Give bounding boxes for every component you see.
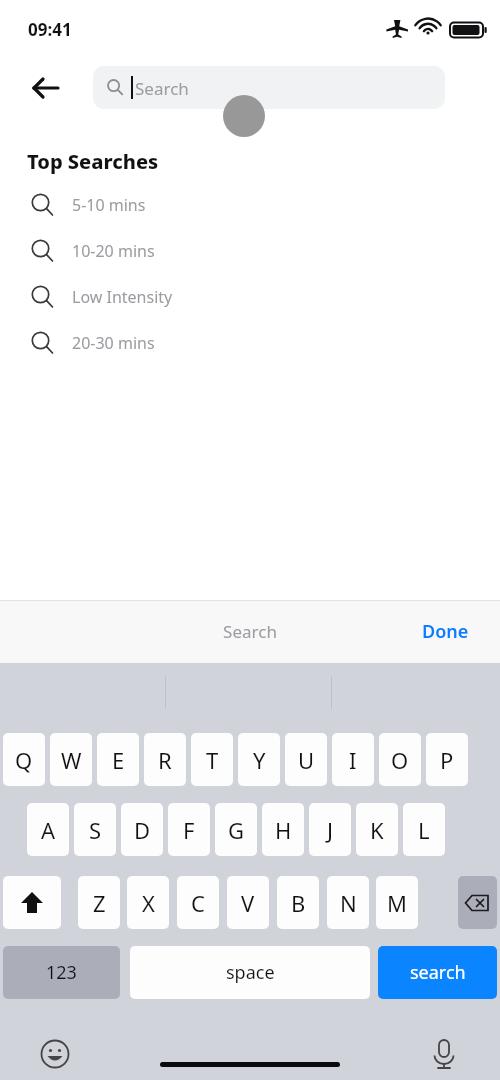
button[interactable]: Profile bbox=[223, 95, 265, 137]
button[interactable]: Back bbox=[22, 64, 70, 112]
staticText: I bbox=[349, 745, 357, 775]
button[interactable]: 20-30 mins bbox=[0, 320, 500, 366]
staticText: M bbox=[387, 888, 407, 918]
staticText: H bbox=[275, 815, 292, 845]
staticText: O bbox=[391, 745, 409, 775]
button[interactable]: space bbox=[130, 946, 370, 999]
staticText: T bbox=[206, 745, 219, 775]
button[interactable]: N bbox=[327, 876, 369, 929]
staticText: B bbox=[291, 888, 306, 918]
button[interactable]: T bbox=[191, 733, 233, 786]
staticText: U bbox=[298, 745, 315, 775]
staticText: 09:41 bbox=[28, 18, 72, 41]
button[interactable]: search bbox=[378, 946, 497, 999]
button[interactable]: 5-10 mins bbox=[0, 182, 500, 228]
button[interactable]: C bbox=[177, 876, 219, 929]
staticText: 10-20 mins bbox=[72, 240, 155, 262]
button[interactable]: P bbox=[426, 733, 468, 786]
button[interactable]: X bbox=[127, 876, 169, 929]
staticText: D bbox=[134, 815, 151, 845]
button[interactable]: Z bbox=[78, 876, 120, 929]
staticText: F bbox=[183, 815, 195, 845]
button[interactable]: H bbox=[262, 803, 304, 856]
staticText: G bbox=[228, 815, 245, 845]
button[interactable]: Backspace bbox=[458, 876, 497, 929]
staticText: space bbox=[226, 960, 275, 985]
staticText: C bbox=[191, 888, 205, 918]
staticText: E bbox=[112, 745, 125, 775]
button[interactable]: A bbox=[27, 803, 69, 856]
staticText: Z bbox=[93, 888, 106, 918]
button[interactable]: M bbox=[376, 876, 418, 929]
button[interactable]: I bbox=[332, 733, 374, 786]
staticText: J bbox=[327, 815, 334, 845]
staticText: search bbox=[410, 960, 466, 985]
staticText: X bbox=[142, 888, 155, 918]
staticText: R bbox=[158, 745, 172, 775]
button[interactable]: K bbox=[356, 803, 398, 856]
button[interactable]: B bbox=[277, 876, 319, 929]
button[interactable]: W bbox=[50, 733, 92, 786]
staticText: Search bbox=[135, 77, 189, 100]
button[interactable]: J bbox=[309, 803, 351, 856]
staticText: 123 bbox=[46, 960, 77, 985]
button[interactable]: D bbox=[121, 803, 163, 856]
button[interactable]: Q bbox=[3, 733, 45, 786]
staticText: W bbox=[61, 745, 82, 775]
staticText: S bbox=[89, 815, 102, 845]
staticText: 5-10 mins bbox=[72, 194, 146, 216]
button[interactable]: Shift bbox=[3, 876, 61, 929]
button[interactable]: U bbox=[285, 733, 327, 786]
button[interactable]: V bbox=[227, 876, 269, 929]
staticText: Q bbox=[15, 745, 33, 775]
button[interactable]: Low Intensity bbox=[0, 274, 500, 320]
staticText: L bbox=[418, 815, 430, 845]
button[interactable]: Y bbox=[238, 733, 280, 786]
button[interactable]: Search bbox=[93, 66, 445, 109]
staticText: Top Searches bbox=[27, 148, 159, 175]
button[interactable]: L bbox=[403, 803, 445, 856]
staticText: Done bbox=[422, 619, 469, 644]
button[interactable]: Emoji bbox=[33, 1032, 77, 1076]
button[interactable]: S bbox=[74, 803, 116, 856]
button[interactable]: G bbox=[215, 803, 257, 856]
button[interactable]: F bbox=[168, 803, 210, 856]
staticText: Search bbox=[0, 620, 500, 644]
staticText: N bbox=[340, 888, 357, 918]
staticText: Low Intensity bbox=[72, 286, 173, 308]
button[interactable]: Dictation bbox=[422, 1032, 466, 1076]
button[interactable]: O bbox=[379, 733, 421, 786]
staticText: K bbox=[370, 815, 384, 845]
staticText: Y bbox=[253, 745, 266, 775]
staticText: V bbox=[241, 888, 255, 918]
button[interactable]: Done bbox=[408, 612, 482, 650]
button[interactable]: 10-20 mins bbox=[0, 228, 500, 274]
staticText: P bbox=[440, 745, 454, 775]
button[interactable]: E bbox=[97, 733, 139, 786]
button[interactable]: R bbox=[144, 733, 186, 786]
staticText: 20-30 mins bbox=[72, 332, 155, 354]
staticText: A bbox=[41, 815, 56, 845]
button[interactable]: 123 bbox=[3, 946, 120, 999]
